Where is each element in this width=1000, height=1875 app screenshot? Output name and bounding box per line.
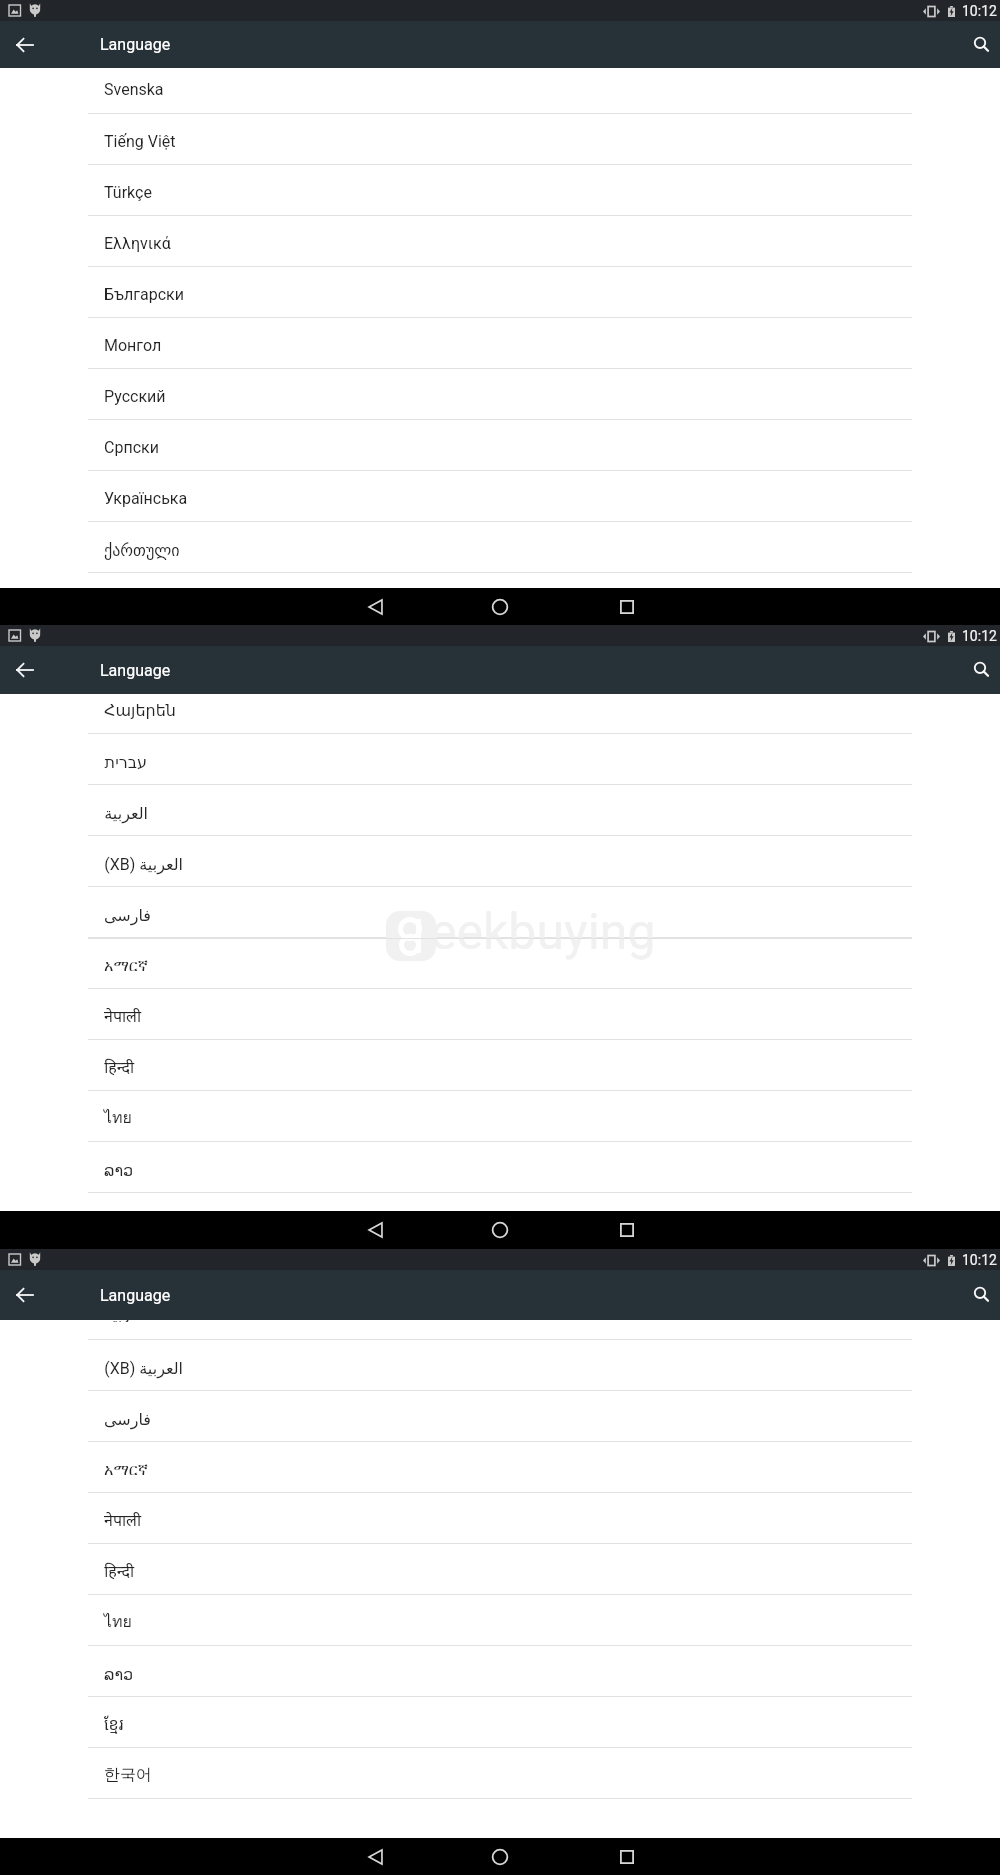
button[interactable]: עברית (0, 734, 1000, 785)
staticText: Русский (104, 385, 166, 407)
button[interactable]: ລາວ (0, 1646, 1000, 1697)
staticText: eekbuying (430, 903, 656, 962)
button[interactable]: فارسی (0, 887, 1000, 938)
staticText: العربية (XB) (104, 1356, 183, 1378)
button[interactable]: العربية (0, 785, 1000, 836)
staticText: ខ្មែរ (104, 1713, 124, 1735)
button[interactable]: ខ្មែរ (0, 1697, 1000, 1748)
staticText: Українська (104, 487, 188, 509)
button[interactable]: Türkçe (0, 165, 1000, 216)
staticText: Türkçe (104, 181, 152, 203)
button[interactable]: አማርኛ (0, 1442, 1000, 1493)
staticText: Српски (104, 436, 159, 458)
staticText: ไทย (104, 1611, 132, 1633)
staticText: አማርኛ (104, 1458, 148, 1480)
staticText: العربية (XB) (104, 852, 183, 874)
staticText: Български (104, 283, 184, 305)
button[interactable]: नेपाली (0, 989, 1000, 1040)
button[interactable]: العربية (0, 1320, 1000, 1340)
button[interactable]: Монгол (0, 318, 1000, 369)
button[interactable]: नेपाली (0, 1493, 1000, 1544)
button[interactable]: ქართული (0, 522, 1000, 573)
staticText: Svenska (104, 78, 164, 100)
button[interactable]: Navigate up (0, 646, 48, 694)
button[interactable]: हिन्दी (0, 1040, 1000, 1091)
staticText: فارسی (104, 903, 151, 925)
button[interactable]: Back (351, 1838, 399, 1875)
staticText: 10:12 (962, 1252, 997, 1268)
staticText: ქართული (104, 538, 180, 560)
staticText: ລາວ (104, 1158, 134, 1180)
button[interactable]: 한국어 (0, 1748, 1000, 1799)
staticText: Ελληνικά (104, 232, 171, 254)
button[interactable]: فارسی (0, 1391, 1000, 1442)
staticText: العربية (104, 801, 148, 823)
button[interactable]: Svenska (0, 68, 1000, 114)
staticText: Հայերեն (104, 698, 176, 720)
button[interactable]: አማርኛ (0, 938, 1000, 989)
button[interactable]: Български (0, 267, 1000, 318)
staticText: हिन्दी (104, 1056, 135, 1078)
staticText: ไทย (104, 1107, 132, 1129)
button[interactable]: Navigate up (0, 1270, 48, 1320)
staticText: Language (100, 661, 171, 680)
staticText: Language (100, 35, 171, 54)
staticText: Tiếng Việt (104, 130, 176, 152)
staticText: فارسی (104, 1407, 151, 1429)
button[interactable]: Українська (0, 471, 1000, 522)
button[interactable]: Search (958, 21, 1000, 68)
staticText: Language (100, 1286, 171, 1305)
staticText: हिन्दी (104, 1560, 135, 1582)
button[interactable]: Back (351, 1211, 399, 1249)
button[interactable]: Back (351, 588, 399, 625)
button[interactable]: Recent apps (603, 1211, 651, 1249)
button[interactable]: Tiếng Việt (0, 114, 1000, 165)
button[interactable]: ລາວ (0, 1142, 1000, 1193)
button[interactable]: Հայերեն (0, 694, 1000, 734)
button[interactable]: Navigate up (0, 21, 48, 68)
staticText: ລາວ (104, 1662, 134, 1684)
staticText: नेपाली (104, 1005, 142, 1027)
button[interactable]: हिन्दी (0, 1544, 1000, 1595)
staticText: 10:12 (962, 628, 997, 644)
button[interactable]: ไทย (0, 1091, 1000, 1142)
button[interactable]: Recent apps (603, 1838, 651, 1875)
staticText: עברית (104, 750, 147, 772)
button[interactable]: Home (476, 1211, 524, 1249)
button[interactable]: Search (958, 1270, 1000, 1320)
button[interactable]: Search (958, 646, 1000, 694)
button[interactable]: Ελληνικά (0, 216, 1000, 267)
button[interactable]: Русский (0, 369, 1000, 420)
button[interactable]: العربية (XB) (0, 836, 1000, 887)
staticText: العربية (104, 1320, 148, 1322)
button[interactable]: ไทย (0, 1595, 1000, 1646)
staticText: 한국어 (104, 1764, 152, 1786)
button[interactable]: Home (476, 588, 524, 625)
button[interactable]: العربية (XB) (0, 1340, 1000, 1391)
staticText: 10:12 (962, 3, 997, 19)
button[interactable]: Home (476, 1838, 524, 1875)
button[interactable]: Српски (0, 420, 1000, 471)
button[interactable]: Recent apps (603, 588, 651, 625)
staticText: አማርኛ (104, 954, 148, 976)
staticText: नेपाली (104, 1509, 142, 1531)
staticText: Монгол (104, 334, 162, 356)
